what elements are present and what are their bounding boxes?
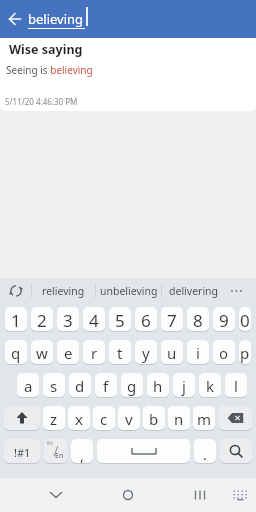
button[interactable]: unbelieving	[99, 284, 159, 298]
staticText: 1	[11, 309, 21, 332]
staticText: r	[91, 343, 98, 363]
button[interactable]: h	[147, 373, 169, 398]
button[interactable]: y	[135, 340, 157, 365]
staticText: w	[36, 343, 48, 363]
staticText: p	[240, 343, 250, 363]
button[interactable]: r	[83, 340, 105, 365]
staticText: b	[149, 409, 159, 429]
staticText: g	[127, 376, 137, 396]
button[interactable]	[97, 439, 190, 464]
button[interactable]: 9	[213, 307, 235, 332]
staticText: En	[55, 451, 64, 461]
staticText: 6	[141, 309, 151, 332]
staticText: Seeing is believing	[6, 63, 93, 77]
button[interactable]: Wise saying	[0, 38, 256, 111]
button[interactable]: s	[43, 373, 65, 398]
button[interactable]: delivering	[166, 284, 222, 298]
button[interactable]: j	[173, 373, 195, 398]
staticText: f	[103, 376, 109, 396]
button[interactable]: 5	[109, 307, 131, 332]
staticText: .	[203, 445, 207, 464]
button[interactable]: k	[199, 373, 221, 398]
staticText: 4	[89, 309, 99, 332]
staticText: 9	[219, 309, 229, 332]
button[interactable]	[86, 478, 171, 512]
button[interactable]: u	[161, 340, 183, 365]
staticText: 8	[193, 309, 203, 332]
staticText: a	[24, 376, 33, 396]
staticText: k	[206, 376, 215, 396]
button[interactable]: o	[213, 340, 235, 365]
staticText: m	[197, 409, 212, 429]
button[interactable]: 1	[5, 307, 27, 332]
staticText: z	[50, 409, 58, 429]
button[interactable]	[0, 278, 30, 304]
staticText: e	[64, 343, 73, 363]
button[interactable]: v	[118, 406, 140, 431]
staticText: 5/11/20 4:46:30 PM	[5, 96, 78, 107]
button[interactable]: d	[69, 373, 91, 398]
button[interactable]: 0	[239, 307, 251, 332]
button[interactable]: 2	[31, 307, 53, 332]
staticText: j	[182, 376, 186, 396]
button[interactable]: w	[31, 340, 53, 365]
staticText: believing	[28, 10, 84, 28]
button[interactable]: a	[17, 373, 39, 398]
button[interactable]: i	[187, 340, 209, 365]
staticText: 7	[167, 309, 177, 332]
button[interactable]: !#1	[4, 439, 40, 464]
button[interactable]: e	[57, 340, 79, 365]
button[interactable]	[4, 406, 40, 431]
button[interactable]: f	[95, 373, 117, 398]
staticText: n	[174, 409, 184, 429]
button[interactable]: m	[193, 406, 215, 431]
button[interactable]: x	[68, 406, 90, 431]
staticText: unbelieving	[100, 284, 158, 298]
button[interactable]	[171, 478, 256, 512]
staticText: u	[167, 343, 177, 363]
button[interactable]	[0, 0, 38, 38]
button[interactable]: l	[225, 373, 247, 398]
button[interactable]: q	[5, 340, 27, 365]
staticText: Kr	[47, 439, 54, 447]
staticText: 3	[63, 309, 73, 332]
staticText: y	[142, 343, 150, 363]
button[interactable]: n	[168, 406, 190, 431]
button[interactable]	[218, 406, 252, 431]
button[interactable]: 7	[161, 307, 183, 332]
staticText: 5	[115, 309, 125, 332]
button[interactable]: t	[109, 340, 131, 365]
staticText: i	[196, 343, 200, 363]
staticText: Wise saying	[9, 41, 83, 58]
staticText: 0	[240, 309, 250, 332]
button[interactable]: b	[143, 406, 165, 431]
button[interactable]: z	[43, 406, 65, 431]
button[interactable]: 4	[83, 307, 105, 332]
button[interactable]: 3	[57, 307, 79, 332]
button[interactable]	[220, 439, 252, 464]
staticText: ,	[80, 446, 84, 465]
button[interactable]	[0, 478, 86, 512]
button[interactable]: Kr	[44, 439, 67, 464]
button[interactable]: 6	[135, 307, 157, 332]
staticText: x	[75, 409, 83, 429]
staticText: q	[11, 343, 21, 363]
button[interactable]: .	[194, 439, 216, 464]
button[interactable]	[230, 284, 244, 298]
staticText: h	[153, 376, 163, 396]
button[interactable]: c	[93, 406, 115, 431]
staticText: s	[50, 376, 58, 396]
staticText: !#1	[14, 445, 31, 460]
staticText: l	[234, 376, 238, 396]
button[interactable]: relieving	[38, 284, 88, 298]
staticText: delivering	[169, 284, 219, 298]
staticText: t	[117, 343, 123, 363]
button[interactable]: 8	[187, 307, 209, 332]
staticText: o	[219, 343, 229, 363]
staticText: d	[75, 376, 85, 396]
button[interactable]: ,	[71, 439, 93, 464]
button[interactable]: p	[239, 340, 251, 365]
staticText: relieving	[42, 284, 85, 298]
button[interactable]: g	[121, 373, 143, 398]
staticText: 2	[37, 309, 47, 332]
